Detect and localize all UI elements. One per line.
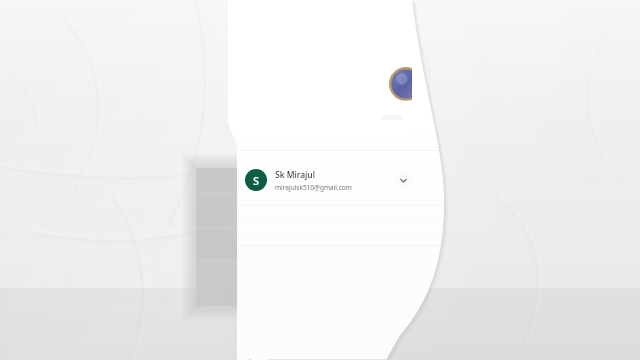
button[interactable]: S <box>237 0 417 360</box>
staticText: Sk Mirajul <box>275 169 315 181</box>
staticText: mirajulsk510@gmail.com <box>275 183 352 192</box>
staticText: S <box>253 173 260 188</box>
button[interactable]: Expand account list <box>395 172 411 188</box>
